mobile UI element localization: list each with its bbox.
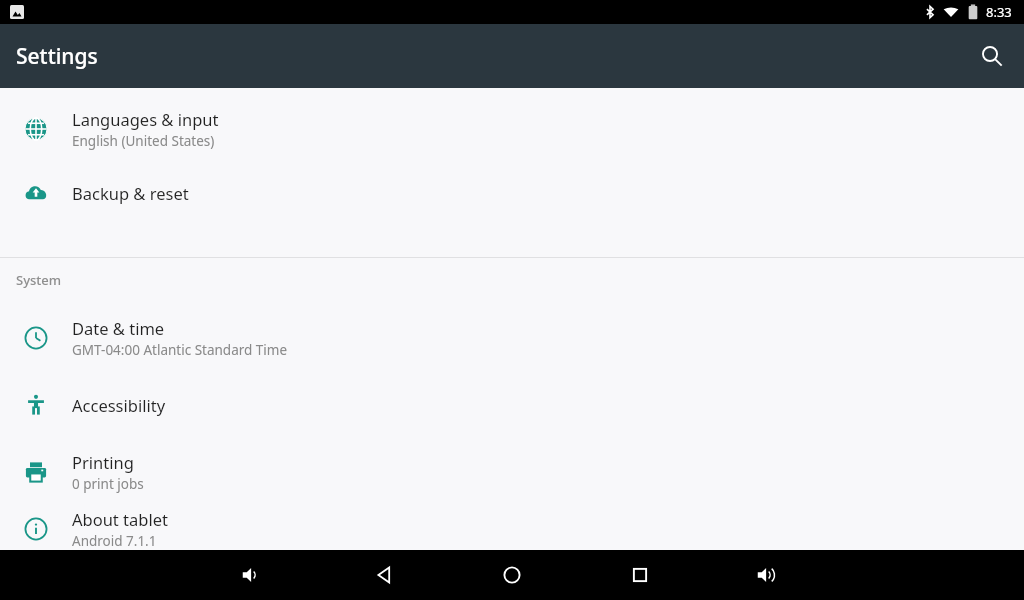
button[interactable]: Backup & reset: [0, 170, 1024, 215]
button[interactable]: Volume up: [743, 551, 791, 599]
button[interactable]: About tablet: [0, 508, 1024, 550]
staticText: Printing: [72, 451, 134, 473]
button[interactable]: Search: [968, 32, 1016, 80]
button[interactable]: Volume down: [228, 551, 276, 599]
staticText: About tablet: [72, 508, 168, 530]
staticText: Android 7.1.1: [72, 532, 157, 550]
button[interactable]: Date & time: [0, 302, 1024, 374]
staticText: 8:33: [986, 3, 1012, 21]
staticText: 0 print jobs: [72, 475, 144, 493]
button[interactable]: Back: [360, 551, 408, 599]
button[interactable]: Home: [488, 551, 536, 599]
button[interactable]: Languages & input: [0, 88, 1024, 170]
button[interactable]: Printing: [0, 436, 1024, 508]
button[interactable]: Accessibility: [0, 374, 1024, 436]
staticText: Accessibility: [72, 394, 166, 416]
staticText: Languages & input: [72, 108, 219, 130]
staticText: Date & time: [72, 317, 165, 339]
staticText: System: [16, 271, 62, 289]
staticText: Settings: [16, 42, 98, 71]
button[interactable]: Recent apps: [616, 551, 664, 599]
staticText: GMT-04:00 Atlantic Standard Time: [72, 341, 288, 359]
staticText: Backup & reset: [72, 182, 189, 204]
staticText: English (United States): [72, 132, 215, 150]
